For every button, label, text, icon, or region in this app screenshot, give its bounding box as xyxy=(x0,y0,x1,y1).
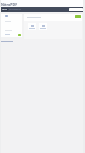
button[interactable]: Search xyxy=(69,8,83,11)
staticText: Home xyxy=(2,8,8,11)
button[interactable]: Upgrade xyxy=(18,34,21,36)
staticText: NitroPDF xyxy=(1,2,18,7)
staticText: Documents xyxy=(9,8,21,11)
button[interactable]: Create PDF xyxy=(75,15,81,18)
button[interactable]: Home xyxy=(2,8,8,11)
button[interactable]: Tool xyxy=(39,23,47,30)
button[interactable]: Tool xyxy=(28,23,36,30)
button[interactable]: Documents xyxy=(9,8,21,11)
